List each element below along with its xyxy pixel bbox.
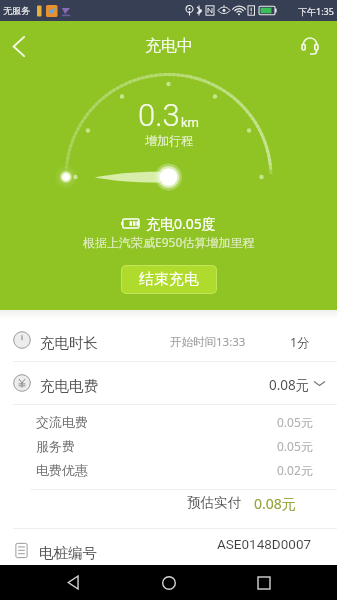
staticText: 0.08元 [269,376,310,394]
staticText: 开始时间13:33 [170,334,246,350]
button[interactable]: 结束充电 [121,265,217,294]
button[interactable]: 电桩编号 [0,529,337,571]
button[interactable]: Back [0,23,46,69]
staticText: km [181,115,199,130]
staticText: 电费优惠 [36,462,88,478]
staticText: ASE0148D0007 [217,536,312,552]
staticText: 结束充电 [139,270,199,289]
staticText: 充电0.05度 [146,214,216,233]
button[interactable]: 充电时长 [0,319,337,361]
staticText: 充电电费 [40,377,98,395]
staticText: 电桩编号 [39,544,97,562]
staticText: 1分 [290,334,310,351]
button[interactable]: Home [147,565,191,600]
button[interactable]: 充电电费 [0,362,337,404]
staticText: 增加行程 [145,133,193,148]
staticText: 预估实付 [187,494,241,511]
staticText: 充电中 [145,36,193,56]
staticText: 0.3 [138,97,180,133]
button[interactable]: Customer support [291,23,337,69]
staticText: 0.05元 [277,414,313,430]
button[interactable]: Recent apps [242,565,286,600]
staticText: 下午1:35 [298,5,334,17]
staticText: 充电时长 [40,334,98,352]
staticText: 0.08元 [254,494,296,513]
staticText: 服务费 [36,438,75,454]
staticText: 无服务 [3,5,30,16]
staticText: 0.05元 [277,438,313,454]
staticText: 0.02元 [277,462,313,478]
staticText: 根据上汽荣威E950估算增加里程 [83,234,255,250]
button[interactable]: Back [51,565,95,600]
staticText: 交流电费 [36,414,88,430]
